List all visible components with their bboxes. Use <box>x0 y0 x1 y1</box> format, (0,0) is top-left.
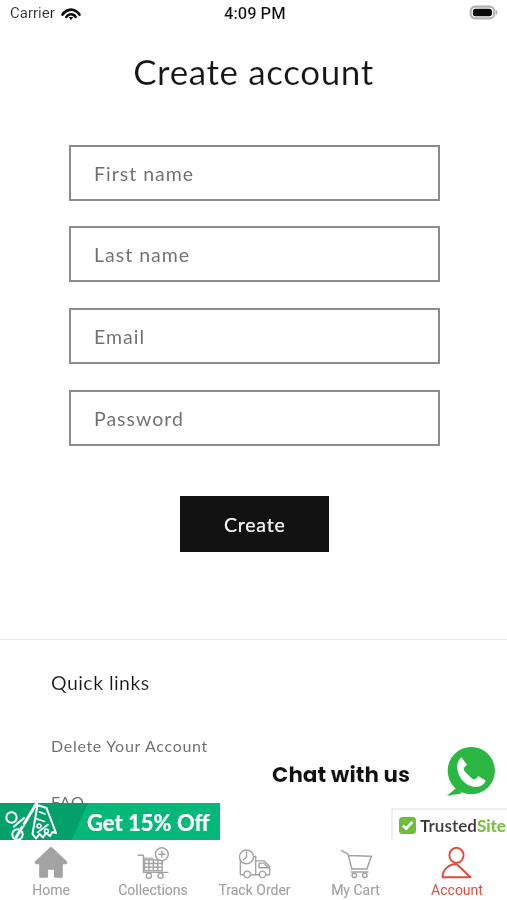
button[interactable]: My Cart <box>305 841 406 898</box>
staticText: Trusted <box>420 815 477 835</box>
staticText: Password <box>94 407 184 430</box>
staticText: Account <box>431 882 483 898</box>
button[interactable]: Trusted <box>392 809 507 840</box>
button[interactable]: Collections <box>102 841 204 898</box>
staticText: Quick links <box>51 671 150 694</box>
button[interactable]: First name <box>69 145 440 201</box>
staticText: Collections <box>118 882 188 898</box>
staticText: Home <box>32 882 70 898</box>
button[interactable]: Email <box>69 308 440 364</box>
staticText: My Cart <box>331 882 380 898</box>
staticText: 4:09 PM <box>224 4 286 23</box>
button[interactable]: Get 15% Off <box>0 803 220 840</box>
button[interactable]: Track Order <box>204 841 305 898</box>
staticText: Last name <box>94 243 191 266</box>
staticText: Email <box>94 325 145 348</box>
button[interactable]: Delete Your Account <box>51 736 209 755</box>
staticText: Chat with us <box>272 759 410 789</box>
button[interactable]: Last name <box>69 226 440 282</box>
button[interactable]: Account <box>406 841 507 898</box>
staticText: Get 15% Off <box>87 809 210 835</box>
staticText: Carrier <box>10 4 55 22</box>
button[interactable]: Home <box>0 841 102 898</box>
staticText: Site <box>477 815 506 835</box>
button[interactable]: Chat on WhatsApp <box>444 746 496 798</box>
staticText: First name <box>94 162 195 185</box>
button[interactable]: FAQ <box>51 792 85 811</box>
staticText: Create account <box>0 50 507 92</box>
staticText: Create <box>224 513 286 536</box>
button[interactable]: Password <box>69 390 440 446</box>
staticText: Track Order <box>218 882 291 898</box>
button[interactable]: Create <box>180 496 329 552</box>
